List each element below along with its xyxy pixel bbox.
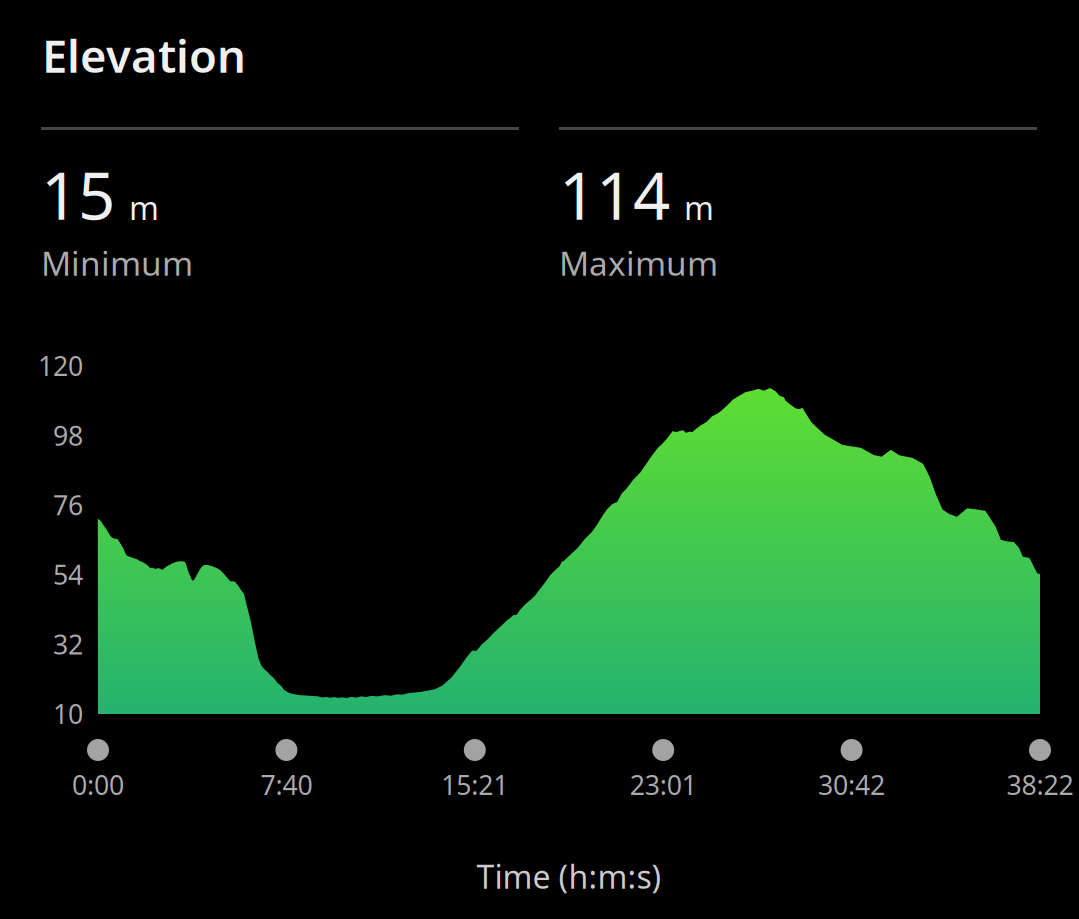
staticText: 7:40: [260, 767, 312, 802]
staticText: 0:00: [72, 767, 124, 802]
staticText: m: [684, 186, 714, 229]
staticText: 120: [38, 348, 83, 383]
staticText: m: [129, 186, 159, 229]
staticText: 98: [53, 418, 83, 453]
staticText: 15:21: [441, 767, 508, 802]
staticText: 23:01: [630, 767, 697, 802]
staticText: Minimum: [41, 241, 193, 285]
staticText: 32: [53, 626, 83, 662]
staticText: 76: [53, 487, 83, 523]
staticText: 30:42: [818, 767, 885, 802]
staticText: 15: [41, 151, 115, 238]
staticText: 54: [53, 557, 83, 592]
staticText: Elevation: [42, 25, 246, 85]
staticText: Time (h:m:s): [476, 855, 661, 897]
staticText: 114: [559, 151, 670, 238]
staticText: 38:22: [1006, 767, 1073, 802]
staticText: Maximum: [559, 241, 718, 285]
button[interactable]: 114: [559, 127, 1037, 293]
staticText: 10: [53, 696, 83, 731]
button[interactable]: Elevation over time chart: [0, 366, 1079, 816]
button[interactable]: 15: [41, 127, 519, 293]
